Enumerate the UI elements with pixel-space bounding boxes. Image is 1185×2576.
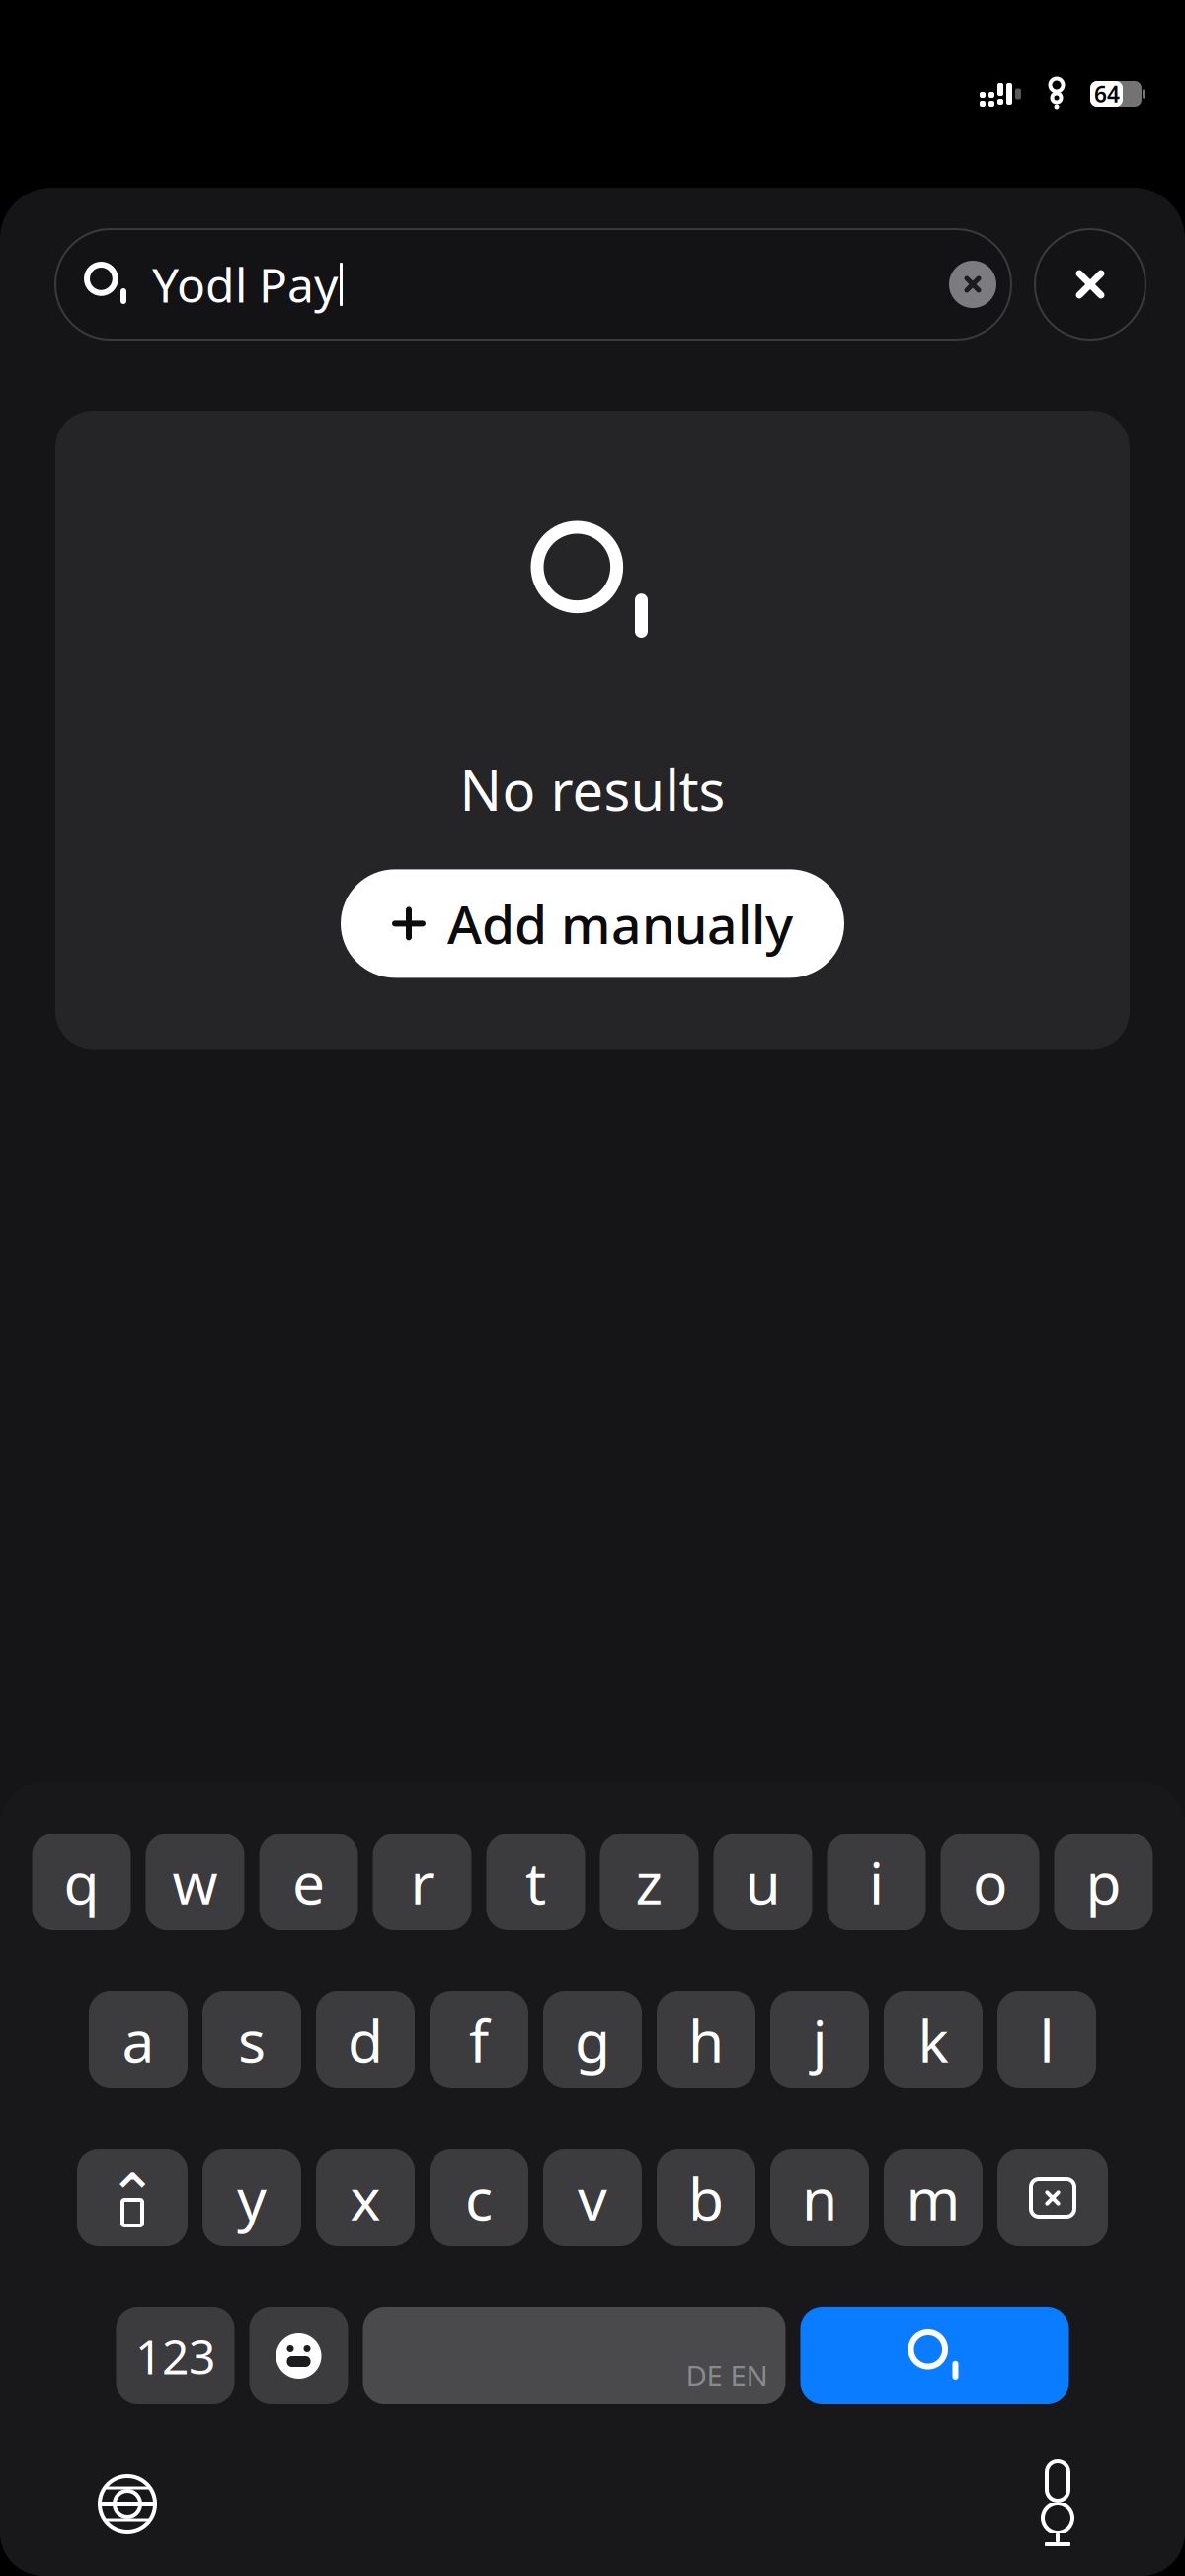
- button[interactable]: i: [827, 1834, 926, 1930]
- button[interactable]: m: [884, 2149, 983, 2246]
- button[interactable]: s: [202, 1991, 301, 2088]
- button[interactable]: e: [259, 1834, 358, 1930]
- button[interactable]: u: [713, 1834, 812, 1930]
- button[interactable]: Emoji: [249, 2307, 348, 2404]
- button[interactable]: j: [770, 1991, 869, 2088]
- button[interactable]: Shift: [77, 2149, 188, 2246]
- button[interactable]: Clear text: [934, 235, 1011, 334]
- staticText: t: [525, 1843, 546, 1920]
- button[interactable]: Search: [800, 2307, 1069, 2404]
- button[interactable]: Backspace: [997, 2149, 1108, 2246]
- staticText: l: [1039, 2001, 1054, 2078]
- button[interactable]: y: [202, 2149, 301, 2246]
- button[interactable]: Voice input: [1003, 2450, 1112, 2558]
- staticText: y: [237, 2159, 267, 2236]
- staticText: r: [410, 1843, 434, 1920]
- staticText: i: [869, 1843, 884, 1920]
- staticText: 64: [1094, 79, 1120, 109]
- staticText: 123: [135, 2324, 215, 2387]
- staticText: f: [469, 2001, 489, 2078]
- staticText: w: [172, 1843, 218, 1920]
- staticText: o: [973, 1843, 1007, 1920]
- button[interactable]: q: [32, 1834, 131, 1930]
- staticText: Yodl Pay: [152, 253, 338, 316]
- staticText: x: [350, 2159, 381, 2236]
- staticText: j: [812, 2001, 827, 2078]
- staticText: q: [64, 1843, 99, 1920]
- button[interactable]: z: [600, 1834, 699, 1930]
- staticText: c: [465, 2159, 493, 2236]
- button[interactable]: f: [430, 1991, 528, 2088]
- staticText: Add manually: [447, 889, 793, 959]
- staticText: u: [745, 1843, 781, 1920]
- staticText: p: [1086, 1843, 1121, 1920]
- button[interactable]: Change language: [73, 2450, 182, 2558]
- button[interactable]: n: [770, 2149, 869, 2246]
- button[interactable]: h: [657, 1991, 755, 2088]
- staticText: z: [635, 1843, 663, 1920]
- staticText: v: [578, 2159, 607, 2236]
- button[interactable]: Add manually: [341, 869, 844, 978]
- button[interactable]: v: [543, 2149, 642, 2246]
- staticText: n: [802, 2159, 837, 2236]
- staticText: h: [688, 2001, 724, 2078]
- button[interactable]: b: [657, 2149, 755, 2246]
- staticText: DE EN: [686, 2356, 768, 2394]
- staticText: k: [918, 2001, 948, 2078]
- staticText: a: [122, 2001, 155, 2078]
- staticText: b: [688, 2159, 724, 2236]
- staticText: No results: [460, 752, 725, 826]
- button[interactable]: k: [884, 1991, 983, 2088]
- staticText: g: [575, 2001, 610, 2078]
- button[interactable]: w: [146, 1834, 244, 1930]
- button[interactable]: p: [1054, 1834, 1153, 1930]
- button[interactable]: g: [543, 1991, 642, 2088]
- staticText: e: [292, 1843, 325, 1920]
- button[interactable]: r: [373, 1834, 472, 1930]
- button[interactable]: c: [430, 2149, 528, 2246]
- button[interactable]: t: [486, 1834, 585, 1930]
- staticText: s: [238, 2001, 266, 2078]
- staticText: m: [906, 2159, 960, 2236]
- staticText: ⌃: [107, 2162, 158, 2230]
- button[interactable]: x: [316, 2149, 415, 2246]
- button[interactable]: a: [89, 1991, 188, 2088]
- button[interactable]: o: [941, 1834, 1039, 1930]
- button[interactable]: 123: [116, 2307, 235, 2404]
- staticText: d: [348, 2001, 383, 2078]
- button[interactable]: Close search: [1035, 229, 1145, 340]
- button[interactable]: Space: [363, 2307, 786, 2404]
- button[interactable]: d: [316, 1991, 415, 2088]
- button[interactable]: l: [997, 1991, 1096, 2088]
